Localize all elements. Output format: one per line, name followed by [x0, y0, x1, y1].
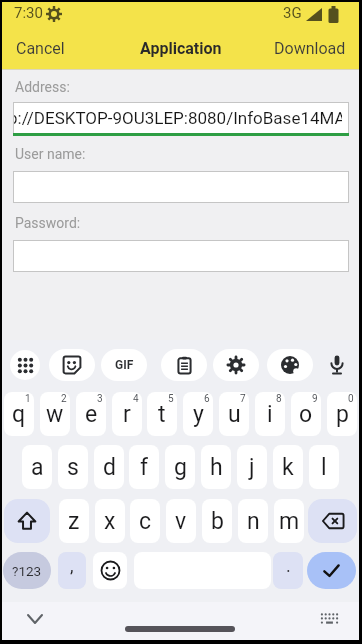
staticText: y — [193, 401, 204, 428]
staticText: p — [336, 401, 349, 428]
button[interactable]: l — [309, 445, 339, 489]
staticText: x — [104, 508, 116, 535]
staticText: d — [103, 454, 116, 481]
staticText: GIF — [115, 358, 134, 372]
staticText: 6 — [204, 393, 210, 405]
button[interactable]: h — [201, 445, 231, 489]
staticText: 7:30 — [14, 4, 43, 22]
button[interactable]: f — [129, 445, 159, 489]
button[interactable]: m — [274, 499, 304, 543]
staticText: j — [249, 454, 255, 481]
staticText: f — [140, 454, 148, 481]
staticText: Download — [274, 39, 346, 58]
button[interactable] — [213, 349, 259, 381]
button[interactable] — [308, 499, 357, 543]
staticText: e — [85, 401, 98, 428]
button[interactable]: GIF — [101, 349, 147, 381]
staticText: o — [299, 401, 313, 428]
staticText: 3 — [97, 393, 103, 405]
button[interactable]: g — [165, 445, 195, 489]
staticText: g — [174, 454, 187, 481]
staticText: i — [267, 401, 273, 428]
button[interactable] — [4, 499, 50, 543]
staticText: l — [321, 454, 327, 481]
button[interactable]: y — [183, 392, 213, 436]
button[interactable]: p — [327, 392, 357, 436]
staticText: m — [279, 508, 300, 535]
staticText: u — [228, 401, 241, 428]
button[interactable] — [13, 171, 349, 203]
button[interactable]: a — [22, 445, 52, 489]
staticText: 3G — [283, 4, 302, 22]
staticText: q — [12, 401, 26, 428]
button[interactable]: t — [147, 392, 177, 436]
staticText: ?123 — [12, 563, 42, 579]
button[interactable]: c — [130, 499, 160, 543]
button[interactable]: o — [291, 392, 321, 436]
button[interactable] — [10, 350, 40, 380]
staticText: s — [67, 454, 79, 481]
staticText: Cancel — [16, 39, 65, 58]
button[interactable]: . — [273, 552, 303, 589]
staticText: 9 — [312, 393, 318, 405]
button[interactable]: d — [94, 445, 124, 489]
button[interactable]: b — [202, 499, 232, 543]
staticText: v — [175, 508, 187, 535]
staticText: 8 — [276, 393, 282, 405]
staticText: . — [286, 555, 291, 576]
button[interactable]: z — [59, 499, 89, 543]
staticText: p://DESKTOP-9OU3LEP:8080/InfoBase14MA — [14, 108, 342, 128]
button[interactable]: k — [273, 445, 303, 489]
staticText: z — [68, 508, 80, 535]
staticText: Address: — [15, 79, 70, 95]
button[interactable]: w — [40, 392, 70, 436]
button[interactable]: q — [4, 392, 34, 436]
staticText: User name: — [15, 146, 86, 162]
button[interactable] — [161, 349, 207, 381]
button[interactable]: Cancel — [8, 33, 73, 63]
button[interactable]: r — [112, 392, 142, 436]
staticText: t — [158, 401, 166, 428]
button[interactable] — [325, 349, 349, 381]
button[interactable]: j — [237, 445, 267, 489]
staticText: 2 — [61, 393, 67, 405]
staticText: Password: — [15, 215, 81, 231]
staticText: 5 — [168, 393, 174, 405]
staticText: n — [247, 508, 260, 535]
staticText: r — [123, 401, 131, 428]
button[interactable]: ?123 — [3, 552, 51, 589]
button[interactable] — [13, 240, 349, 272]
staticText: b — [211, 508, 224, 535]
button[interactable]: p://DESKTOP-9OU3LEP:8080/InfoBase14MA — [13, 102, 349, 136]
staticText: 0 — [348, 393, 354, 405]
staticText: 7 — [240, 393, 246, 405]
button[interactable]: Download — [270, 33, 350, 63]
staticText: w — [46, 401, 64, 428]
staticText: 1 — [25, 393, 31, 405]
staticText: 4 — [133, 393, 139, 405]
staticText: , — [70, 555, 74, 576]
button[interactable] — [314, 606, 344, 632]
button[interactable]: n — [238, 499, 268, 543]
button[interactable]: e — [76, 392, 106, 436]
staticText: a — [31, 454, 44, 481]
button[interactable]: s — [58, 445, 88, 489]
button[interactable]: x — [95, 499, 125, 543]
button[interactable] — [267, 349, 313, 381]
staticText: Application — [140, 39, 222, 58]
staticText: c — [139, 508, 152, 535]
button[interactable]: v — [166, 499, 196, 543]
button[interactable]: , — [58, 552, 86, 589]
button[interactable] — [20, 606, 50, 632]
button[interactable]: i — [255, 392, 285, 436]
button[interactable]: u — [219, 392, 249, 436]
staticText: k — [282, 454, 294, 481]
button[interactable] — [49, 349, 95, 381]
button[interactable] — [93, 552, 127, 589]
staticText: h — [210, 454, 223, 481]
button[interactable] — [307, 552, 356, 589]
